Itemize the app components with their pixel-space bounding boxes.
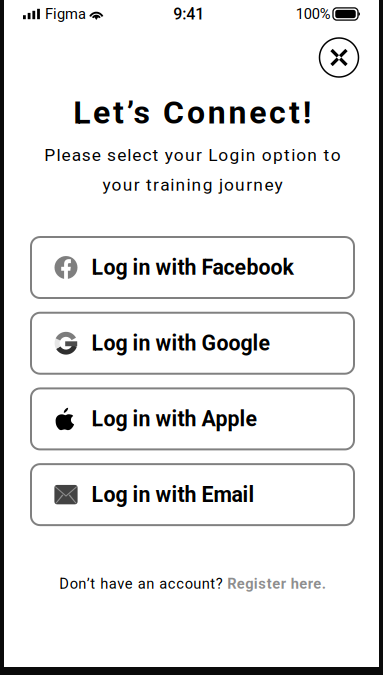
staticText: Log in with Apple (91, 406, 257, 431)
staticText: Log in with Google (91, 331, 270, 356)
button[interactable]: Log in with Apple (31, 388, 354, 449)
staticText: Let’s Connect! (73, 94, 312, 131)
staticText: Figma (45, 5, 86, 23)
button[interactable]: Register here. (227, 575, 326, 592)
staticText: Register here. (227, 575, 326, 592)
staticText: Log in with Email (91, 482, 254, 507)
staticText: 9:41 (173, 5, 204, 23)
button[interactable]: Close (319, 38, 358, 77)
button[interactable]: Log in with Google (31, 313, 354, 374)
staticText: Don’t have an account? (59, 575, 227, 592)
staticText: Log in with Facebook (91, 255, 293, 280)
staticText: 100% (296, 5, 331, 23)
staticText: your training journey (102, 175, 282, 195)
button[interactable]: Log in with Facebook (31, 237, 354, 298)
staticText: Please select your Login option to (44, 145, 341, 165)
button[interactable]: Log in with Email (31, 464, 354, 525)
